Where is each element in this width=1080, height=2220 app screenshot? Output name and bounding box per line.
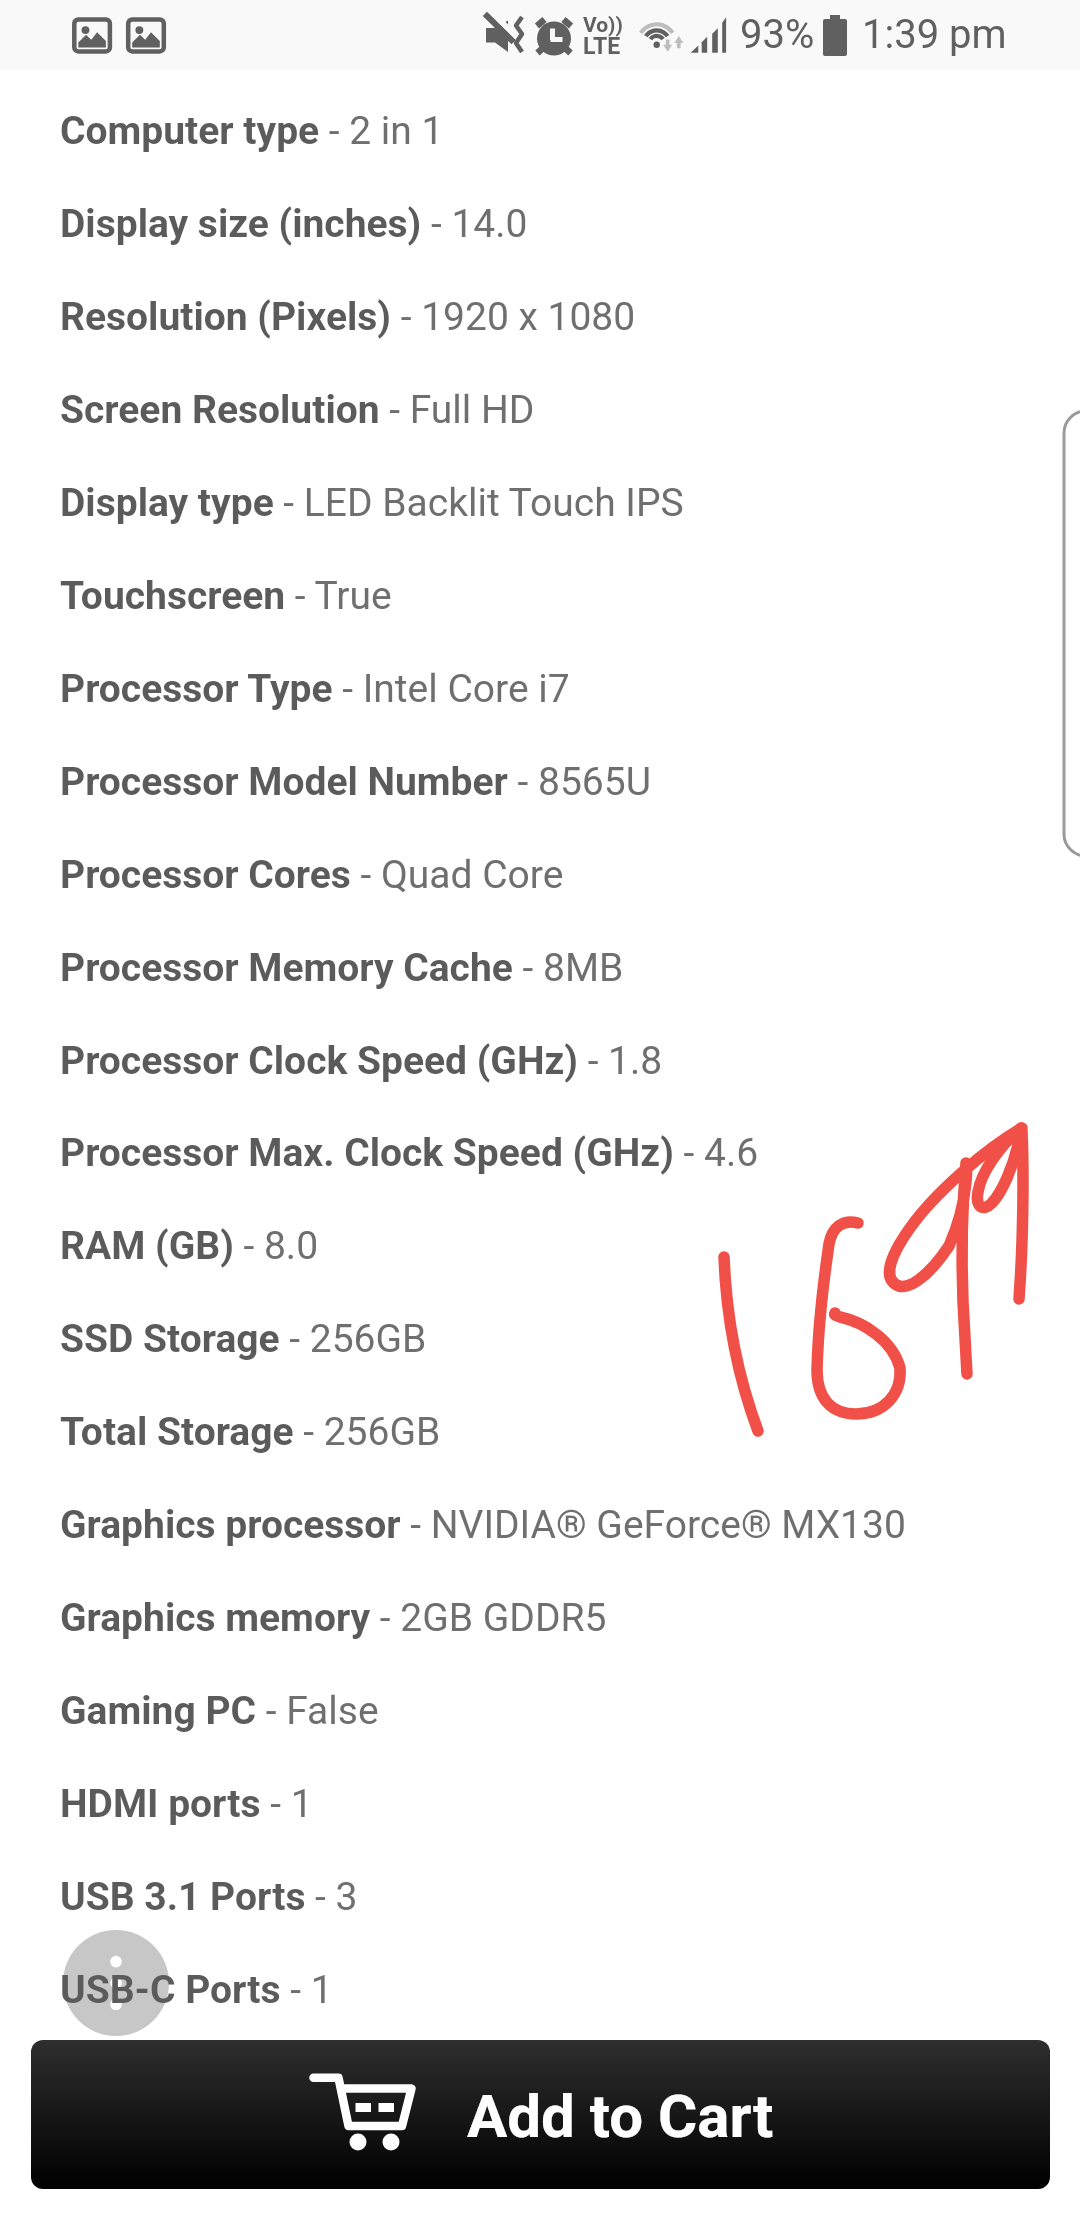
staticText: USB-C Ports - 1 xyxy=(60,1967,333,2013)
button[interactable]: Processor Cores - Quad Core xyxy=(0,852,1080,945)
staticText: Processor Clock Speed (GHz) - 1.8 xyxy=(60,1038,663,1084)
staticText: LTE xyxy=(583,33,621,60)
staticText: Resolution (Pixels) - 1920 x 1080 xyxy=(60,294,636,340)
staticText: Touchscreen - True xyxy=(60,573,392,619)
staticText: SSD Storage - 256GB xyxy=(60,1316,427,1362)
staticText: Processor Max. Clock Speed (GHz) - 4.6 xyxy=(60,1130,759,1176)
staticText: Processor Model Number - 8565U xyxy=(60,759,651,805)
button[interactable]: More options xyxy=(63,1930,169,2036)
button[interactable]: Add to Cart xyxy=(31,2040,1050,2189)
staticText: Graphics memory - 2GB GDDR5 xyxy=(60,1595,607,1641)
button[interactable]: Computer type - 2 in 1 xyxy=(0,108,1080,201)
button[interactable]: USB-C Ports - 1 xyxy=(0,1967,1080,2060)
staticText: Display size (inches) - 14.0 xyxy=(60,201,528,247)
button[interactable]: Touchscreen - True xyxy=(0,573,1080,666)
staticText: HDMI ports - 1 xyxy=(60,1781,313,1827)
button[interactable]: Resolution (Pixels) - 1920 x 1080 xyxy=(0,294,1080,387)
staticText: Processor Type - Intel Core i7 xyxy=(60,666,570,712)
button[interactable]: Processor Max. Clock Speed (GHz) - 4.6 xyxy=(0,1130,1080,1223)
button[interactable]: Total Storage - 256GB xyxy=(0,1409,1080,1502)
staticText: USB 3.1 Ports - 3 xyxy=(60,1874,358,1920)
button[interactable]: Gaming PC - False xyxy=(0,1688,1080,1781)
button[interactable]: Display type - LED Backlit Touch IPS xyxy=(0,480,1080,573)
button[interactable]: Graphics memory - 2GB GDDR5 xyxy=(0,1595,1080,1688)
button[interactable]: SSD Storage - 256GB xyxy=(0,1316,1080,1409)
button[interactable]: RAM (GB) - 8.0 xyxy=(0,1223,1080,1316)
button[interactable]: USB 3.1 Ports - 3 xyxy=(0,1874,1080,1967)
staticText: Vo)) xyxy=(583,13,623,38)
button[interactable]: Processor Model Number - 8565U xyxy=(0,759,1080,852)
staticText: Total Storage - 256GB xyxy=(60,1409,441,1455)
button[interactable]: HDMI ports - 1 xyxy=(0,1781,1080,1874)
staticText: Display type - LED Backlit Touch IPS xyxy=(60,480,684,526)
staticText: Processor Cores - Quad Core xyxy=(60,852,564,898)
staticText: Computer type - 2 in 1 xyxy=(60,108,444,154)
staticText: Processor Memory Cache - 8MB xyxy=(60,945,624,991)
button[interactable]: Processor Type - Intel Core i7 xyxy=(0,666,1080,759)
button[interactable]: Screen Resolution - Full HD xyxy=(0,387,1080,480)
staticText: 1:39 pm xyxy=(862,11,1007,58)
button[interactable]: Display size (inches) - 14.0 xyxy=(0,201,1080,294)
staticText: RAM (GB) - 8.0 xyxy=(60,1223,319,1269)
button[interactable]: Processor Clock Speed (GHz) - 1.8 xyxy=(0,1038,1080,1131)
staticText: 93% xyxy=(740,11,815,58)
staticText: Add to Cart xyxy=(467,2081,774,2151)
button[interactable]: Graphics processor - NVIDIA® GeForce® MX… xyxy=(0,1502,1080,1595)
button[interactable]: Processor Memory Cache - 8MB xyxy=(0,945,1080,1038)
staticText: Gaming PC - False xyxy=(60,1688,379,1734)
staticText: Screen Resolution - Full HD xyxy=(60,387,535,433)
staticText: Graphics processor - NVIDIA® GeForce® MX… xyxy=(60,1502,906,1548)
